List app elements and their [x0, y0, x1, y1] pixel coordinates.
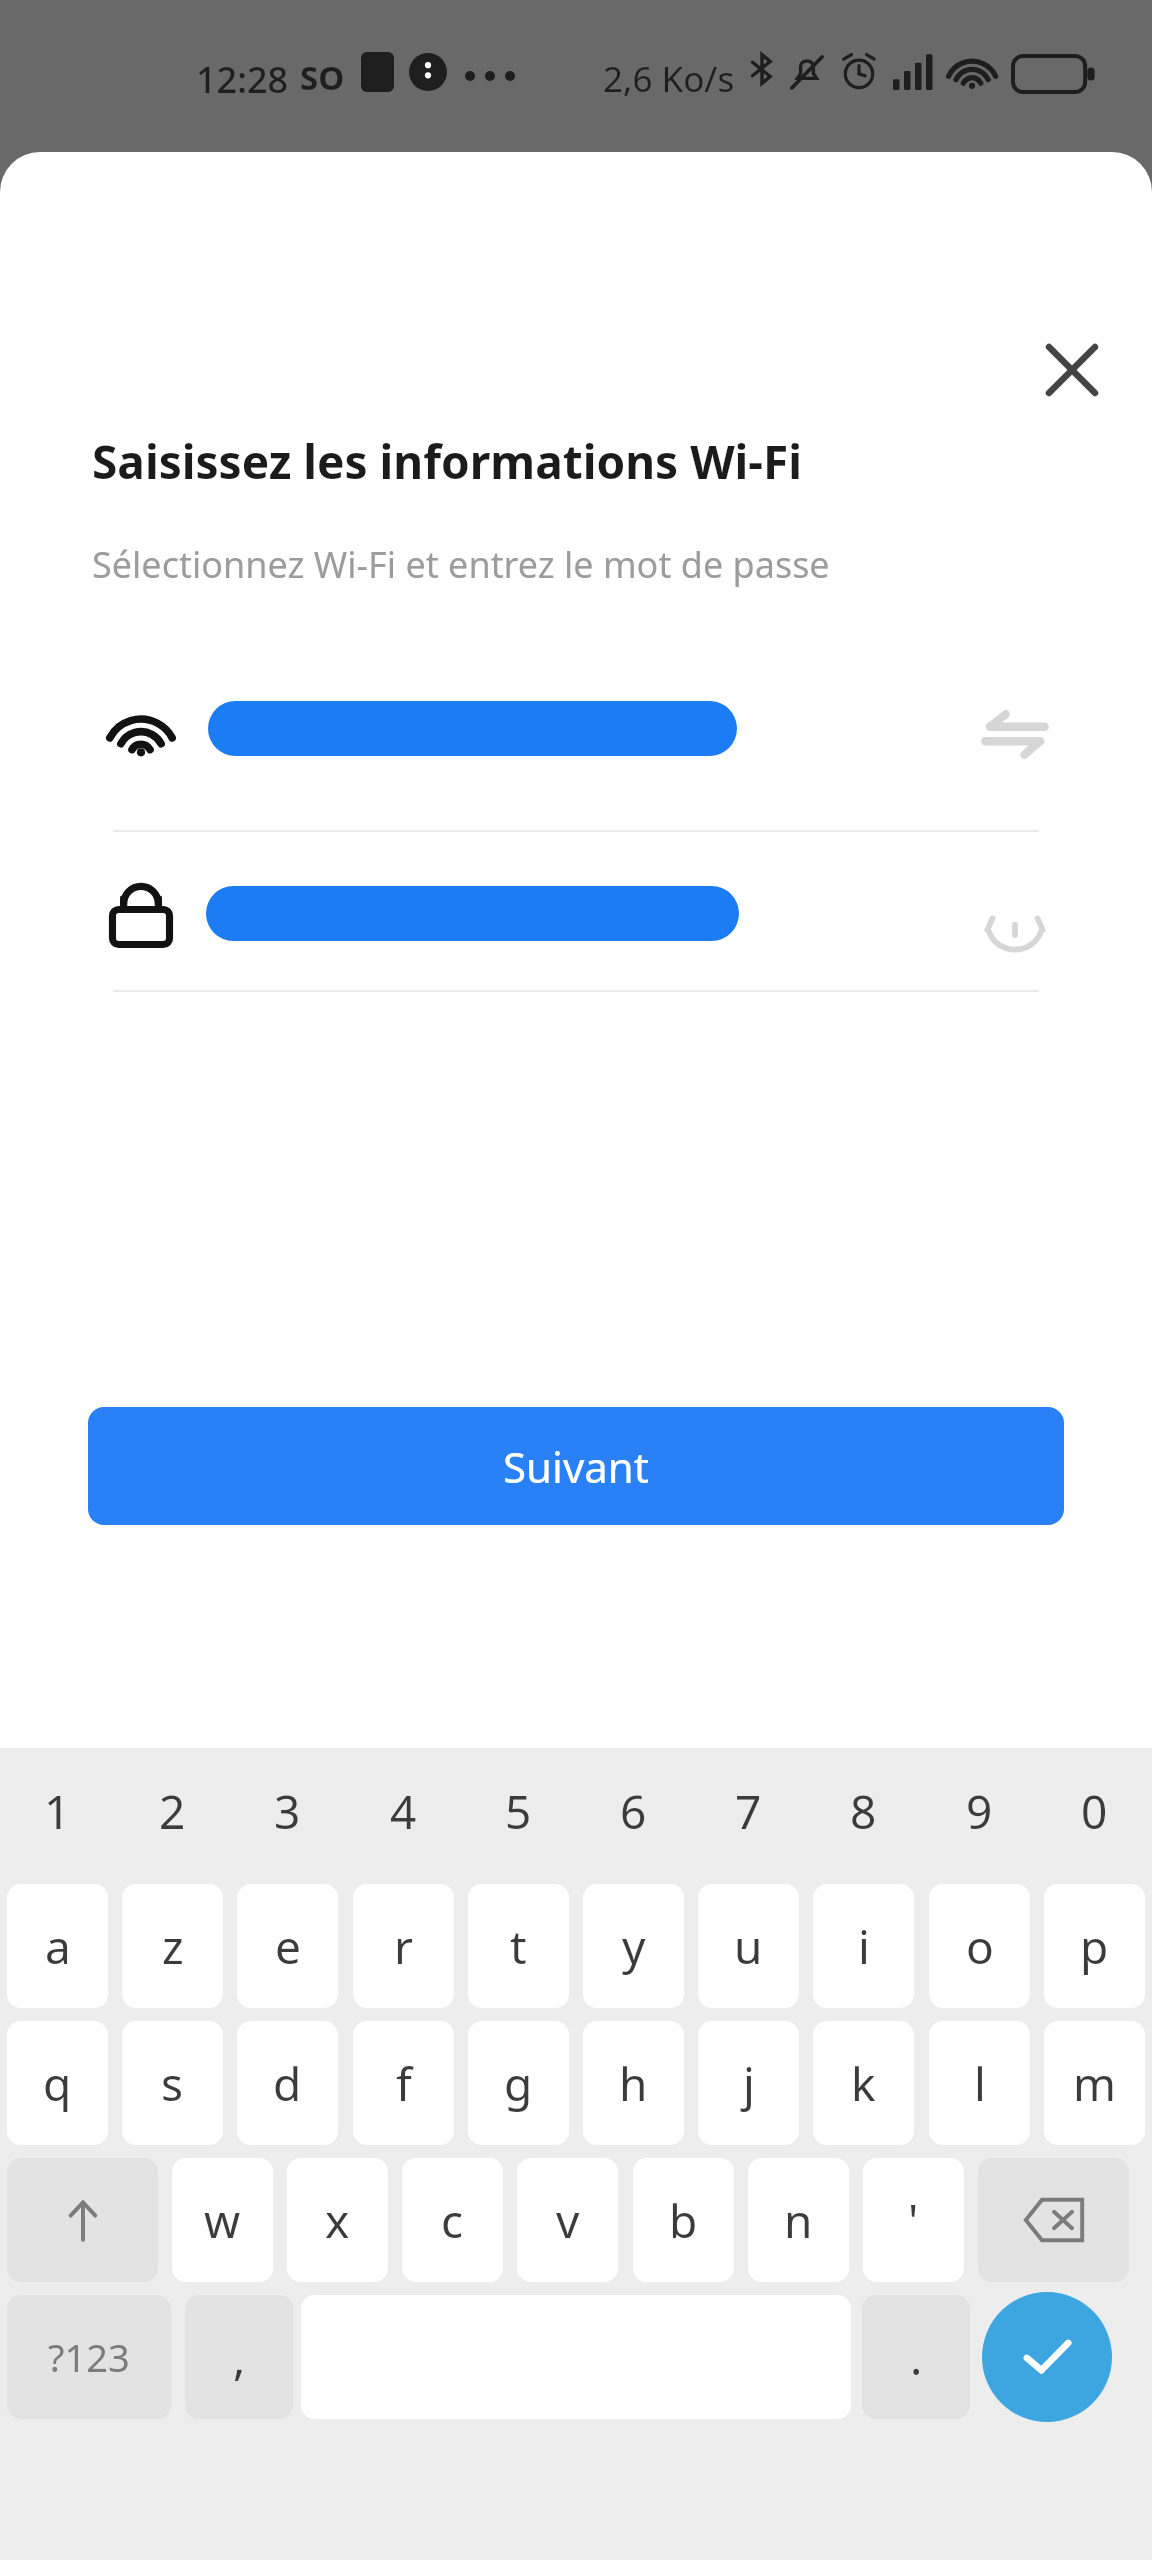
staticText: n [784, 2189, 813, 2252]
button[interactable]: y [583, 1884, 684, 2008]
staticText: . [910, 2326, 923, 2389]
staticText: d [273, 2052, 302, 2115]
staticText: Suivant [503, 1438, 649, 1495]
staticText: i [858, 1915, 870, 1978]
staticText: l [974, 2052, 986, 2115]
staticText: z [162, 1915, 184, 1978]
button[interactable]: n [748, 2158, 849, 2282]
button[interactable]: 8 [806, 1752, 921, 1870]
button[interactable]: r [353, 1884, 454, 2008]
staticText: y [622, 1915, 646, 1978]
button[interactable]: ' [863, 2158, 964, 2282]
button[interactable]: u [698, 1884, 799, 2008]
button[interactable]: Maj [7, 2158, 158, 2282]
staticText: s [161, 2052, 184, 2115]
button[interactable]: h [583, 2021, 684, 2145]
staticText: j [743, 2052, 755, 2115]
staticText: u [734, 1915, 763, 1978]
button[interactable]: m [1044, 2021, 1145, 2145]
button[interactable]: 9 [922, 1752, 1037, 1870]
button[interactable]: 3 [230, 1752, 345, 1870]
button[interactable]: l [929, 2021, 1030, 2145]
staticText: , [233, 2326, 246, 2389]
staticText: a [45, 1915, 71, 1978]
button[interactable]: Retour arrière [978, 2158, 1129, 2282]
staticText: k [851, 2052, 876, 2115]
staticText: p [1080, 1915, 1109, 1978]
button[interactable]: 4 [346, 1752, 461, 1870]
button[interactable]: g [468, 2021, 569, 2145]
button[interactable]: q [7, 2021, 108, 2145]
button[interactable]: p [1044, 1884, 1145, 2008]
button[interactable]: w [172, 2158, 273, 2282]
button[interactable]: 6 [576, 1752, 691, 1870]
button[interactable]: t [468, 1884, 569, 2008]
staticText: r [394, 1915, 413, 1978]
button[interactable]: . [862, 2295, 970, 2419]
staticText: w [204, 2189, 241, 2252]
button[interactable] [0, 646, 1152, 832]
staticText: h [619, 2052, 648, 2115]
button[interactable]: ?123 [7, 2295, 171, 2419]
staticText: x [325, 2189, 350, 2252]
button[interactable]: a [7, 1884, 108, 2008]
button[interactable]: o [929, 1884, 1030, 2008]
button[interactable]: s [122, 2021, 223, 2145]
staticText: 6 [620, 1780, 647, 1843]
staticText: c [441, 2189, 464, 2252]
button[interactable]: 5 [461, 1752, 576, 1870]
button[interactable]: Fermer [1018, 316, 1126, 424]
button[interactable]: Valider [982, 2292, 1112, 2422]
staticText: ?123 [48, 2331, 130, 2383]
staticText: Saisissez les informations Wi-Fi [92, 430, 803, 493]
staticText: b [669, 2189, 698, 2252]
staticText: g [504, 2052, 533, 2115]
staticText: Sélectionnez Wi-Fi et entrez le mot de p… [92, 540, 830, 589]
button[interactable]: k [813, 2021, 914, 2145]
staticText: 7 [735, 1780, 762, 1843]
staticText: 3 [274, 1780, 301, 1843]
staticText: 5 [505, 1780, 532, 1843]
staticText: v [556, 2189, 580, 2252]
staticText: 8 [850, 1780, 877, 1843]
staticText: m [1073, 2052, 1117, 2115]
button[interactable]: 2 [115, 1752, 230, 1870]
button[interactable]: Suivant [88, 1407, 1064, 1525]
staticText: 2 [159, 1780, 186, 1843]
staticText: ' [908, 2189, 919, 2252]
button[interactable]: c [402, 2158, 503, 2282]
button[interactable]: e [237, 1884, 338, 2008]
button[interactable]: f [353, 2021, 454, 2145]
staticText: 4 [390, 1780, 417, 1843]
button[interactable]: b [633, 2158, 734, 2282]
staticText: 1 [44, 1780, 71, 1843]
staticText: f [396, 2052, 412, 2115]
staticText: q [43, 2052, 72, 2115]
staticText: 0 [1081, 1780, 1108, 1843]
button[interactable]: z [122, 1884, 223, 2008]
button[interactable]: d [237, 2021, 338, 2145]
button[interactable]: 7 [691, 1752, 806, 1870]
button[interactable]: v [517, 2158, 618, 2282]
button[interactable] [0, 834, 1152, 990]
staticText: o [966, 1915, 994, 1978]
button[interactable]: i [813, 1884, 914, 2008]
staticText: e [275, 1915, 301, 1978]
staticText: 12:28 [196, 55, 289, 104]
staticText: 2,6 Ko/s [603, 55, 735, 103]
button[interactable]: j [698, 2021, 799, 2145]
button[interactable]: 1 [0, 1752, 115, 1870]
button[interactable]: 0 [1037, 1752, 1152, 1870]
staticText: SO [300, 55, 345, 100]
button[interactable]: , [185, 2295, 293, 2419]
staticText: 9 [966, 1780, 993, 1843]
button[interactable]: x [287, 2158, 388, 2282]
staticText: t [510, 1915, 527, 1978]
